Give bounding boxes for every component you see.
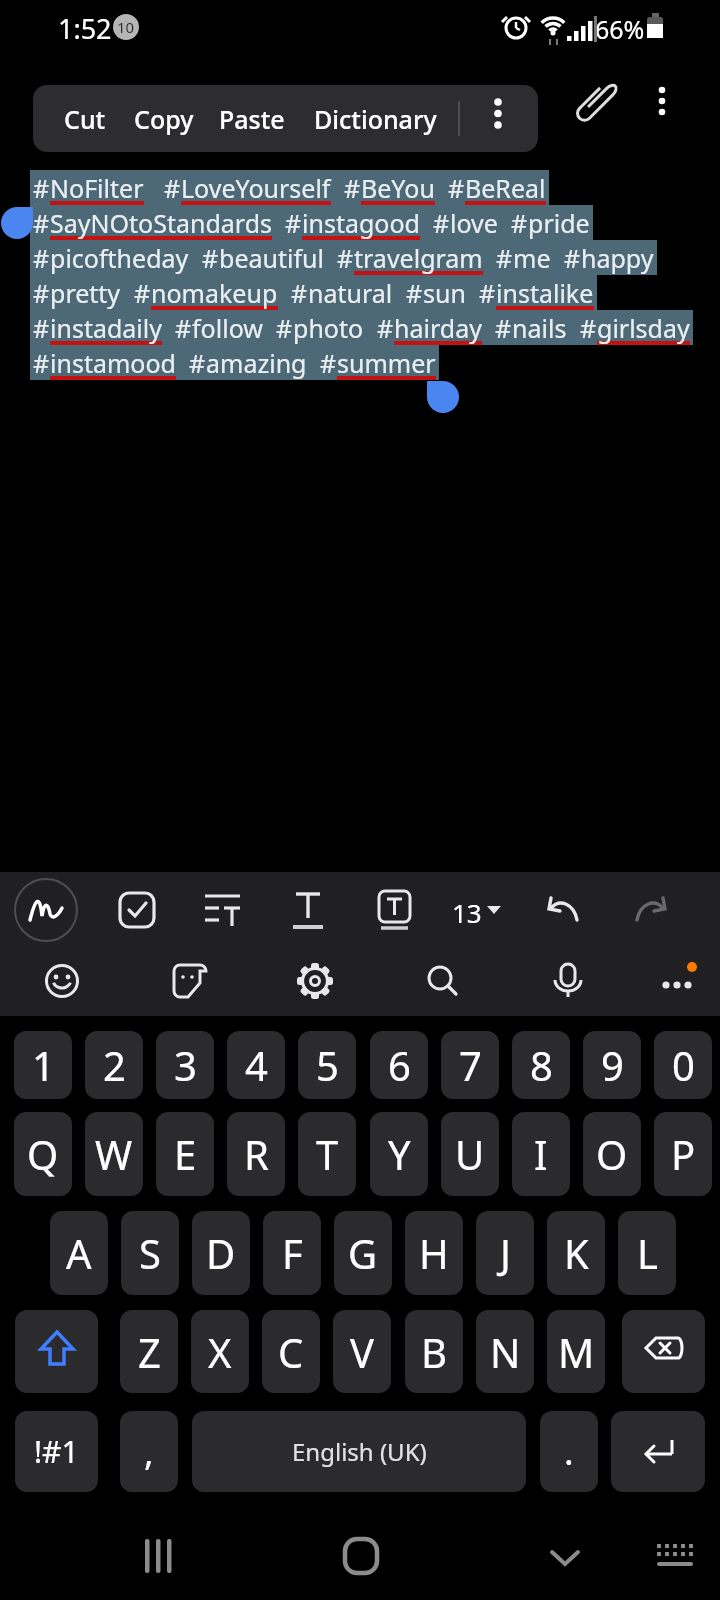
button[interactable]: X xyxy=(191,1310,249,1393)
button[interactable] xyxy=(120,948,240,1016)
button[interactable] xyxy=(630,872,720,948)
staticText: amazing xyxy=(206,346,307,380)
staticText: 3 xyxy=(174,1038,197,1092)
button[interactable]: U xyxy=(441,1112,499,1196)
button[interactable]: Paste xyxy=(219,85,285,152)
button[interactable]: L xyxy=(618,1211,676,1295)
button[interactable]: Q xyxy=(14,1112,72,1196)
staticText: T xyxy=(316,1127,339,1181)
staticText: BeReal xyxy=(465,171,546,205)
staticText: follow xyxy=(192,311,263,345)
button[interactable]: F xyxy=(263,1211,321,1295)
staticText: instalike xyxy=(496,276,594,310)
button[interactable]: I xyxy=(512,1112,570,1196)
button[interactable] xyxy=(0,872,90,948)
staticText: nails xyxy=(512,311,567,345)
button[interactable] xyxy=(274,1510,447,1600)
button[interactable] xyxy=(360,872,450,948)
button[interactable] xyxy=(622,1310,705,1393)
button[interactable]: D xyxy=(192,1211,250,1295)
button[interactable]: R xyxy=(227,1112,285,1196)
button[interactable]: . xyxy=(540,1411,598,1492)
button[interactable] xyxy=(480,948,600,1016)
button[interactable]: Y xyxy=(370,1112,428,1196)
staticText: N xyxy=(490,1325,521,1379)
staticText: LoveYourself xyxy=(181,171,331,205)
button[interactable]: O xyxy=(583,1112,641,1196)
button[interactable]: , xyxy=(120,1411,178,1492)
button[interactable] xyxy=(360,948,480,1016)
button[interactable] xyxy=(540,872,630,948)
staticText: Y xyxy=(388,1127,411,1181)
button[interactable]: Dictionary xyxy=(314,85,437,152)
button[interactable] xyxy=(100,1510,274,1600)
staticText: 1:52 xyxy=(58,10,112,47)
button[interactable]: 9 xyxy=(583,1031,641,1099)
staticText: 5 xyxy=(316,1038,339,1092)
button[interactable] xyxy=(450,872,540,948)
button[interactable]: !#1 xyxy=(15,1411,98,1492)
staticText: happy xyxy=(581,241,654,275)
button[interactable]: 4 xyxy=(227,1031,285,1099)
button[interactable]: 2 xyxy=(85,1031,143,1099)
button[interactable]: S xyxy=(121,1211,179,1295)
staticText: 8 xyxy=(530,1038,553,1092)
button[interactable]: T xyxy=(298,1112,356,1196)
button[interactable]: J xyxy=(476,1211,534,1295)
button[interactable]: V xyxy=(333,1310,391,1393)
button[interactable]: 3 xyxy=(156,1031,214,1099)
staticText: J xyxy=(500,1226,511,1280)
staticText: # xyxy=(320,346,337,380)
staticText: # xyxy=(276,311,293,345)
button[interactable]: H xyxy=(405,1211,463,1295)
button[interactable] xyxy=(240,948,360,1016)
button[interactable]: English (UK) xyxy=(192,1411,526,1492)
button[interactable]: K xyxy=(547,1211,605,1295)
staticText: NoFilter xyxy=(50,171,144,205)
button[interactable]: E xyxy=(156,1112,214,1196)
staticText: K xyxy=(564,1226,589,1280)
staticText: nomakeup xyxy=(151,276,278,310)
staticText: H xyxy=(419,1226,449,1280)
staticText: O xyxy=(596,1127,628,1181)
button[interactable]: B xyxy=(405,1310,463,1393)
button[interactable]: 8 xyxy=(512,1031,570,1099)
staticText: # xyxy=(377,311,394,345)
button[interactable]: W xyxy=(85,1112,143,1196)
staticText: 2 xyxy=(103,1038,126,1092)
staticText: # xyxy=(580,311,597,345)
button[interactable]: Z xyxy=(120,1310,178,1393)
staticText: # xyxy=(175,311,192,345)
button[interactable] xyxy=(270,872,360,948)
staticText: instadaily xyxy=(50,311,162,345)
button[interactable]: G xyxy=(334,1211,392,1295)
button[interactable]: C xyxy=(262,1310,320,1393)
button[interactable] xyxy=(90,872,180,948)
button[interactable]: 7 xyxy=(441,1031,499,1099)
staticText: pride xyxy=(528,206,590,240)
button[interactable] xyxy=(0,948,120,1016)
button[interactable] xyxy=(15,1310,98,1393)
button[interactable] xyxy=(64,85,130,151)
staticText: # xyxy=(33,241,50,275)
button[interactable]: M xyxy=(547,1310,605,1393)
button[interactable]: P xyxy=(654,1112,712,1196)
staticText: # xyxy=(189,346,206,380)
button[interactable]: N xyxy=(476,1310,534,1393)
button[interactable] xyxy=(560,75,710,135)
button[interactable]: Cut xyxy=(64,85,106,152)
button[interactable]: 0 xyxy=(654,1031,712,1099)
button[interactable]: Copy xyxy=(134,85,194,152)
button[interactable]: 1 xyxy=(14,1031,72,1099)
button[interactable]: 6 xyxy=(370,1031,428,1099)
button[interactable] xyxy=(473,85,538,152)
staticText: 1 xyxy=(32,1038,55,1092)
button[interactable] xyxy=(447,1510,620,1600)
button[interactable] xyxy=(600,948,720,1016)
staticText: A xyxy=(66,1226,92,1280)
staticText: !#1 xyxy=(34,1431,79,1472)
button[interactable]: 5 xyxy=(298,1031,356,1099)
button[interactable] xyxy=(180,872,270,948)
button[interactable]: A xyxy=(50,1211,108,1295)
button[interactable] xyxy=(611,1411,705,1492)
